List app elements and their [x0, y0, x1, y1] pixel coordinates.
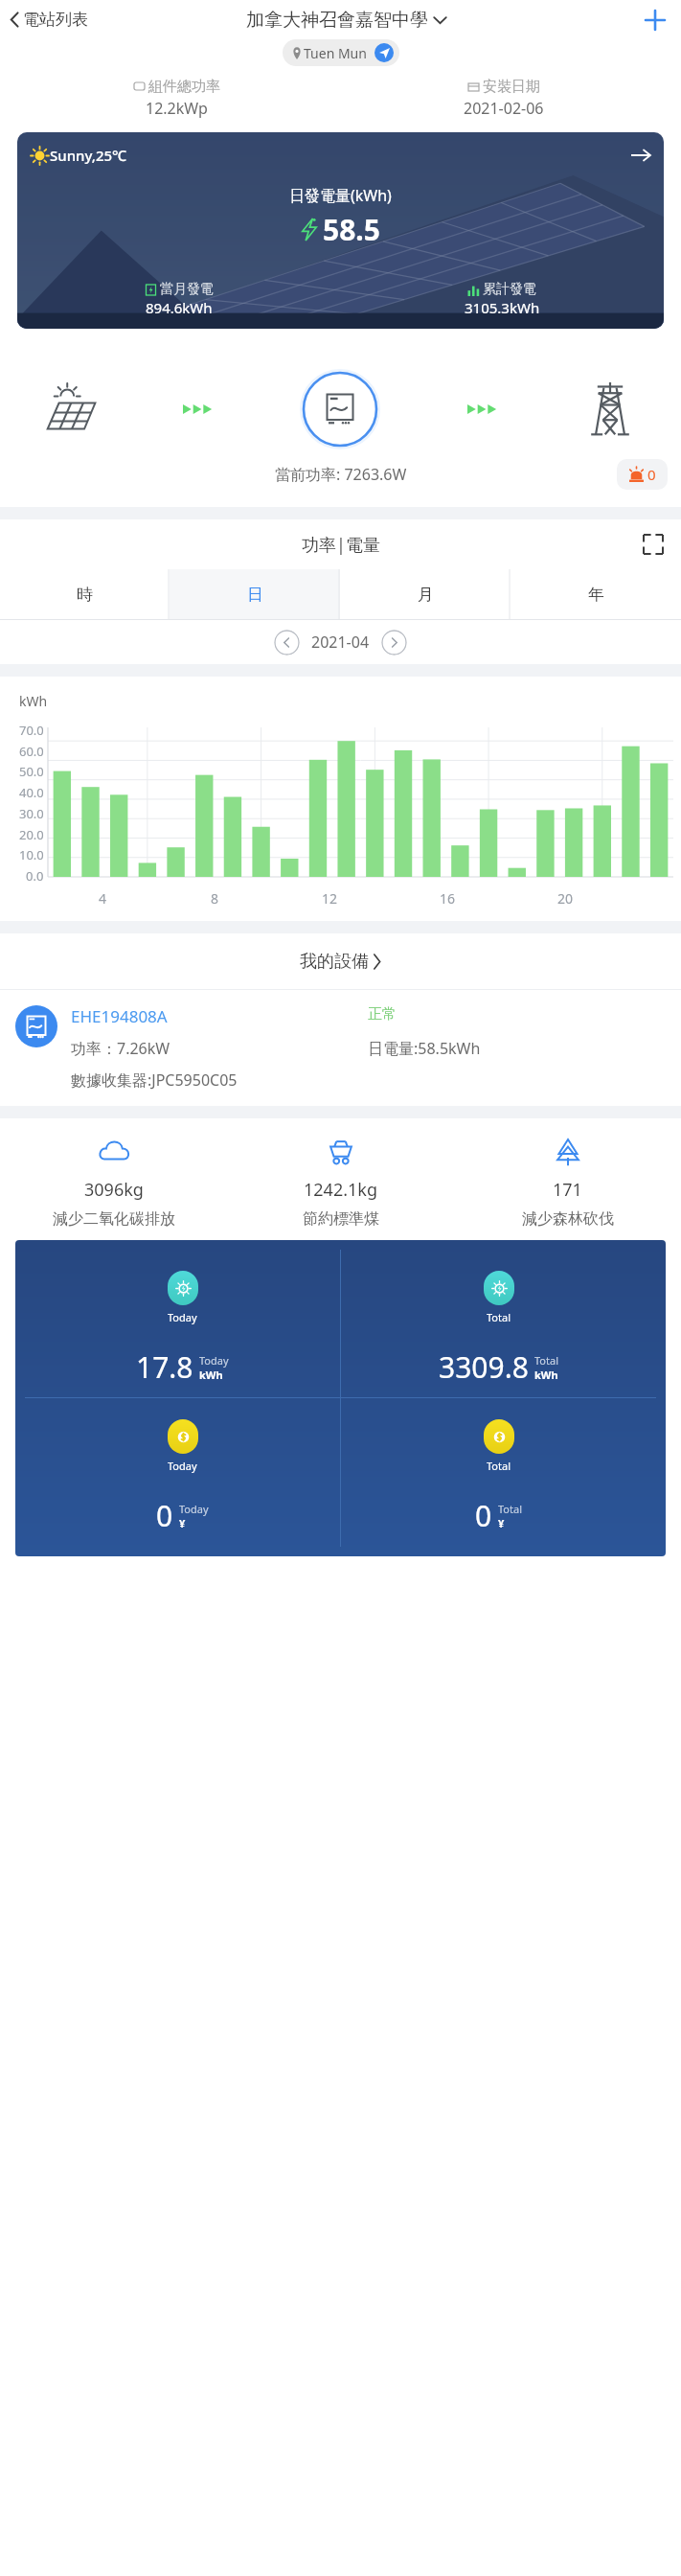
- button[interactable]: 日: [170, 569, 340, 619]
- staticText: 加拿大神召會嘉智中學: [246, 9, 428, 32]
- staticText: 安裝日期: [483, 78, 540, 96]
- staticText: 171: [553, 1178, 582, 1202]
- staticText: 30.0: [19, 805, 44, 822]
- staticText: 月: [418, 585, 434, 605]
- staticText: 0: [475, 1496, 492, 1535]
- staticText: 日發電量(kWh): [289, 185, 392, 206]
- button[interactable]: 時: [0, 569, 170, 619]
- staticText: EHE194808A: [71, 1005, 368, 1027]
- staticText: 0.0: [26, 867, 44, 885]
- button[interactable]: Fullscreen: [639, 530, 668, 559]
- staticText: 日電量:58.5kWh: [368, 1038, 666, 1059]
- staticText: ¥: [179, 1516, 186, 1530]
- staticText: 數據收集器:JPC5950C05: [71, 1069, 238, 1091]
- staticText: ¥: [498, 1516, 505, 1530]
- staticText: kWh: [534, 1368, 558, 1382]
- staticText: 50.0: [19, 763, 44, 780]
- staticText: 年: [588, 585, 604, 605]
- staticText: Tuen Mun: [304, 44, 367, 62]
- staticText: 減少二氧化碳排放: [53, 1209, 175, 1229]
- staticText: Today: [168, 1310, 197, 1324]
- button[interactable]: Tuen Mun: [283, 39, 399, 66]
- staticText: 減少森林砍伐: [522, 1209, 614, 1229]
- staticText: Total: [534, 1353, 558, 1368]
- staticText: 3309.8: [439, 1347, 529, 1387]
- staticText: kWh: [199, 1368, 223, 1382]
- staticText: Total: [487, 1310, 511, 1324]
- staticText: 20.0: [19, 826, 44, 843]
- staticText: 功率|電量: [302, 533, 380, 557]
- staticText: 894.6kWh: [146, 298, 213, 317]
- button[interactable]: Total: [341, 1398, 656, 1547]
- staticText: Sunny,25℃: [50, 146, 127, 165]
- staticText: 3105.3kWh: [465, 298, 540, 317]
- staticText: Today: [168, 1459, 197, 1473]
- staticText: 0: [156, 1496, 173, 1535]
- button[interactable]: 3096kg: [0, 1136, 227, 1229]
- button[interactable]: EHE194808A: [0, 990, 681, 1106]
- staticText: 1242.1kg: [304, 1178, 377, 1202]
- button[interactable]: Add: [639, 4, 671, 36]
- staticText: 時: [77, 585, 93, 605]
- staticText: Today: [179, 1502, 209, 1516]
- staticText: kWh: [19, 692, 48, 710]
- staticText: 累計發電: [483, 281, 536, 298]
- button[interactable]: 我的設備: [300, 951, 381, 973]
- staticText: 16: [440, 889, 456, 908]
- staticText: 3096kg: [84, 1178, 144, 1202]
- staticText: 60.0: [19, 743, 44, 760]
- staticText: 功率：7.26kW: [71, 1038, 368, 1059]
- staticText: 當前功率: 7263.6W: [275, 464, 407, 485]
- button[interactable]: Today: [25, 1398, 340, 1547]
- staticText: 我的設備: [300, 951, 369, 973]
- staticText: 當月發電: [160, 281, 214, 298]
- staticText: Total: [487, 1459, 511, 1473]
- staticText: 2021-02-06: [464, 98, 544, 119]
- staticText: 4: [99, 889, 107, 908]
- button[interactable]: Today: [25, 1250, 340, 1397]
- staticText: 17.8: [136, 1347, 193, 1387]
- button[interactable]: 171: [454, 1136, 681, 1229]
- staticText: 2021-04: [311, 632, 370, 653]
- staticText: 40.0: [19, 784, 44, 801]
- button[interactable]: 電站列表: [4, 6, 94, 34]
- staticText: 10.0: [19, 846, 44, 863]
- button[interactable]: 月: [340, 569, 511, 619]
- button[interactable]: 0: [617, 459, 668, 490]
- staticText: Total: [498, 1502, 522, 1516]
- staticText: 12.2kWp: [146, 98, 208, 119]
- staticText: 日: [247, 585, 263, 605]
- staticText: 12: [322, 889, 338, 908]
- staticText: 節約標準煤: [303, 1209, 379, 1229]
- staticText: 8: [211, 889, 219, 908]
- button[interactable]: Sunny,25℃: [17, 132, 664, 329]
- staticText: Today: [199, 1353, 229, 1368]
- staticText: 電站列表: [23, 10, 88, 30]
- staticText: 70.0: [19, 722, 44, 739]
- staticText: 組件總功率: [148, 78, 220, 96]
- staticText: 58.5: [323, 210, 380, 249]
- button[interactable]: Previous: [274, 630, 300, 655]
- button[interactable]: Next: [381, 630, 407, 655]
- staticText: 20: [557, 889, 574, 908]
- button[interactable]: 加拿大神召會嘉智中學: [246, 9, 447, 32]
- staticText: 0: [647, 465, 656, 484]
- button[interactable]: 1242.1kg: [227, 1136, 454, 1229]
- button[interactable]: 年: [511, 569, 681, 619]
- staticText: 正常: [368, 1005, 666, 1023]
- button[interactable]: Total: [341, 1250, 656, 1397]
